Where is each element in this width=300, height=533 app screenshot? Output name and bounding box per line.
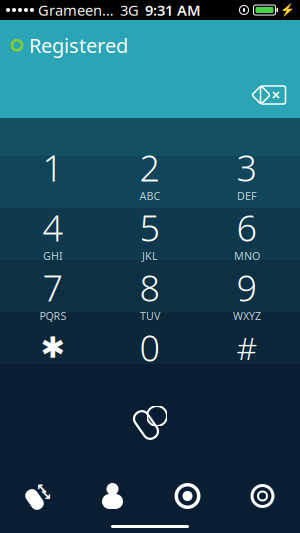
- staticText: 9: [236, 264, 257, 311]
- staticText: ABC: [139, 189, 160, 203]
- staticText: GHI: [43, 249, 63, 263]
- staticText: 0: [139, 324, 160, 371]
- button[interactable]: 7: [4, 262, 101, 322]
- button[interactable]: 3: [198, 142, 295, 202]
- button[interactable]: Call: [128, 400, 172, 444]
- button[interactable]: #: [198, 322, 295, 382]
- staticText: Grameen…: [38, 0, 114, 20]
- staticText: 9:31 AM: [145, 0, 201, 20]
- staticText: 5: [139, 204, 160, 251]
- staticText: 4: [42, 204, 63, 251]
- button[interactable]: 1: [4, 142, 101, 202]
- staticText: TUV: [140, 309, 160, 323]
- staticText: JKL: [142, 249, 158, 263]
- staticText: 6: [236, 204, 257, 251]
- staticText: WXYZ: [233, 309, 261, 323]
- staticText: ↖: [36, 481, 48, 497]
- button[interactable]: ✱: [4, 322, 101, 382]
- button[interactable]: 9: [198, 262, 295, 322]
- button[interactable]: 4: [4, 202, 101, 262]
- button[interactable]: Contacts: [75, 473, 150, 519]
- staticText: 2: [139, 144, 160, 191]
- staticText: #: [236, 326, 257, 369]
- staticText: ✱: [40, 331, 65, 364]
- staticText: 3G: [120, 0, 139, 20]
- button[interactable]: 2: [101, 142, 198, 202]
- staticText: PQRS: [39, 309, 66, 323]
- button[interactable]: 5: [101, 202, 198, 262]
- staticText: 1: [42, 144, 63, 191]
- button[interactable]: Delete: [248, 80, 292, 110]
- staticText: 8: [139, 264, 160, 311]
- button[interactable]: 6: [198, 202, 295, 262]
- staticText: ⚡: [280, 3, 295, 17]
- staticText: Registered: [29, 32, 128, 59]
- staticText: 3: [236, 144, 257, 191]
- button[interactable]: 8: [101, 262, 198, 322]
- button[interactable]: 0: [101, 322, 198, 382]
- staticText: MNO: [234, 249, 260, 263]
- button[interactable]: Keypad: [150, 473, 225, 519]
- staticText: 7: [42, 264, 63, 311]
- staticText: DEF: [237, 189, 257, 203]
- button[interactable]: Recents: [0, 473, 75, 519]
- button[interactable]: Settings: [225, 473, 300, 519]
- staticText: ↘: [39, 487, 51, 503]
